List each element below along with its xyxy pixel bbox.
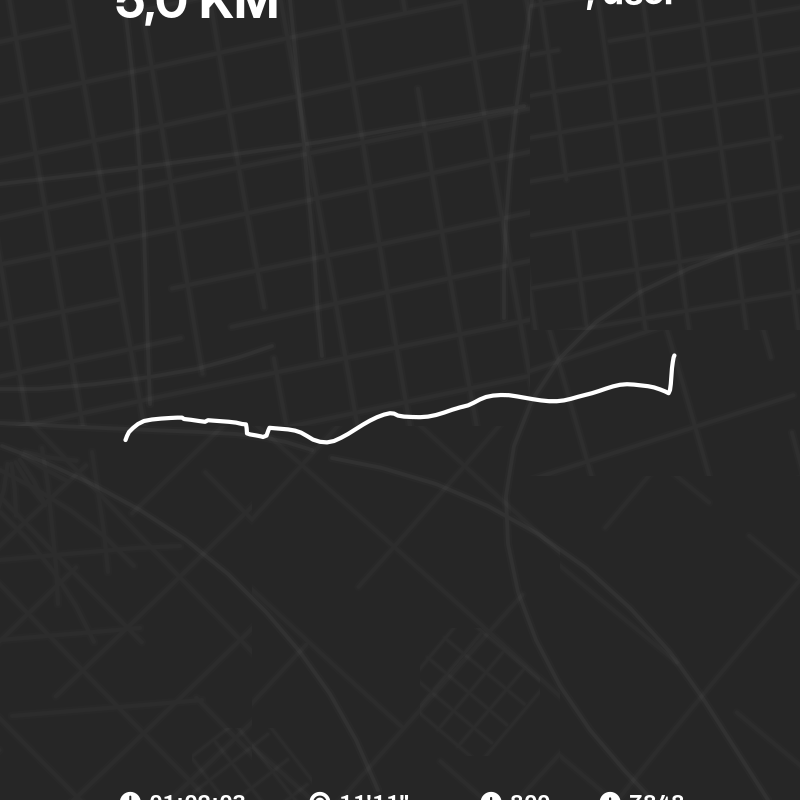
button[interactable]: Duration <box>120 790 246 800</box>
button[interactable]: Steps <box>600 790 685 800</box>
staticText: 800 <box>510 790 550 800</box>
button[interactable]: Average pace <box>309 790 409 800</box>
staticText: 7848 <box>629 790 685 800</box>
button[interactable]: Calories <box>481 790 550 800</box>
staticText: 01:02:03 <box>149 790 246 800</box>
staticText: 5,0 KM <box>115 0 279 30</box>
staticText: 11'11" <box>339 790 409 800</box>
staticText: , user <box>586 0 678 13</box>
